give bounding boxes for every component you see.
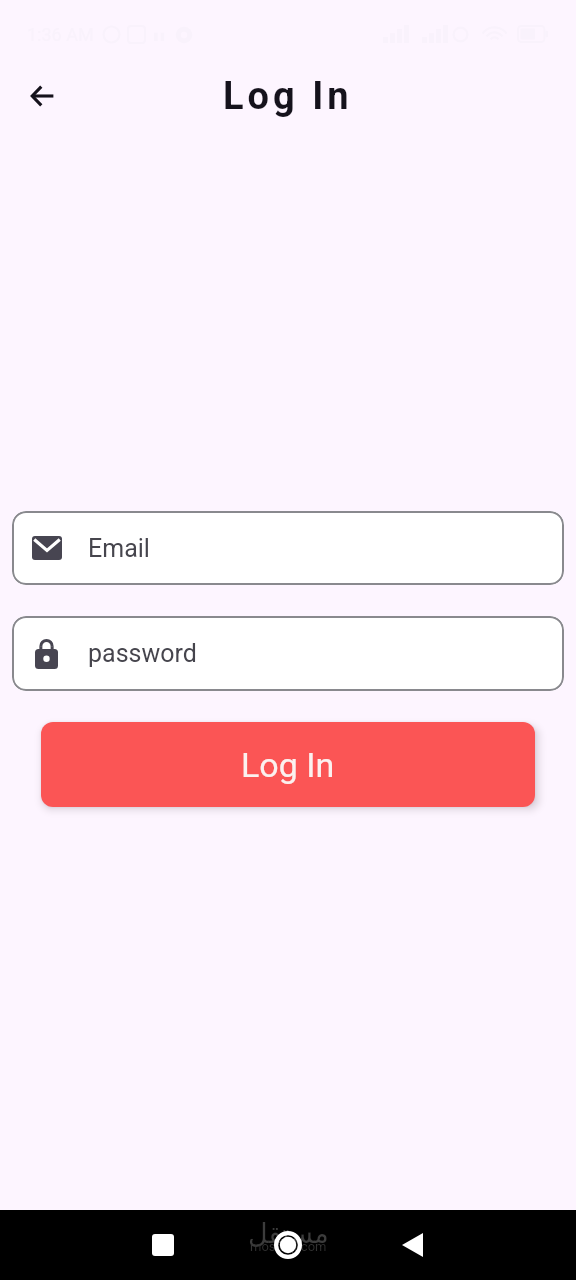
button[interactable]: Recent apps	[133, 1215, 193, 1275]
staticText: Log In	[223, 74, 353, 119]
staticText: مستقل	[248, 1218, 329, 1249]
button[interactable]: Home	[258, 1215, 318, 1275]
button[interactable]: Back	[382, 1215, 442, 1275]
button[interactable]: Email	[12, 511, 564, 585]
staticText: mostaql.com	[250, 1239, 327, 1254]
staticText: Email	[88, 534, 150, 563]
button[interactable]: password	[12, 616, 564, 691]
button[interactable]: Log In	[41, 722, 535, 807]
staticText: password	[88, 639, 197, 668]
button[interactable]: Back	[13, 67, 70, 124]
staticText: Log In	[241, 745, 335, 785]
